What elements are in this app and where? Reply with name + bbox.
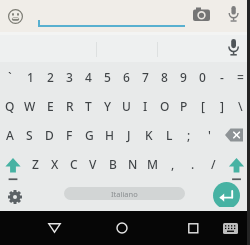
button[interactable]: H xyxy=(99,120,119,149)
button[interactable] xyxy=(219,120,250,149)
staticText: E xyxy=(47,98,54,114)
button[interactable]: 9 xyxy=(174,62,193,91)
button[interactable]: = xyxy=(231,62,250,91)
staticText: ; xyxy=(187,127,191,143)
button[interactable]: Z xyxy=(26,149,45,178)
staticText: 8 xyxy=(161,69,168,85)
button[interactable]: Q xyxy=(0,91,20,120)
staticText: , xyxy=(171,156,175,172)
button[interactable]: O xyxy=(155,91,174,120)
staticText: M xyxy=(147,156,159,172)
button[interactable]: R xyxy=(60,91,79,120)
button[interactable]: - xyxy=(212,62,231,91)
button[interactable] xyxy=(42,216,66,240)
button[interactable]: Y xyxy=(98,91,117,120)
button[interactable]: T xyxy=(79,91,98,120)
button[interactable]: 0 xyxy=(193,62,212,91)
staticText: - xyxy=(220,69,224,85)
staticText: K xyxy=(145,127,153,143)
button[interactable]: ; xyxy=(179,120,199,149)
button[interactable]: K xyxy=(139,120,159,149)
button[interactable] xyxy=(181,216,205,240)
staticText: L xyxy=(166,127,173,143)
staticText: [ xyxy=(201,98,205,114)
button[interactable]: 8 xyxy=(155,62,174,91)
staticText: 9 xyxy=(180,69,187,85)
staticText: H xyxy=(105,127,114,143)
button[interactable]: ' xyxy=(199,120,219,149)
staticText: N xyxy=(128,156,138,172)
button[interactable]: . xyxy=(183,149,203,178)
button[interactable]: P xyxy=(174,91,193,120)
staticText: 6 xyxy=(123,69,130,85)
button[interactable]: I xyxy=(136,91,155,120)
button[interactable]: Italiano xyxy=(64,187,185,200)
button[interactable]: J xyxy=(119,120,139,149)
staticText: ] xyxy=(220,98,224,114)
button[interactable]: ` xyxy=(0,62,20,91)
button[interactable]: 3 xyxy=(60,62,79,91)
button[interactable]: N xyxy=(123,149,143,178)
button[interactable] xyxy=(227,38,240,57)
staticText: Y xyxy=(104,98,112,114)
staticText: B xyxy=(109,156,117,172)
staticText: 4 xyxy=(85,69,92,85)
button[interactable]: \ xyxy=(231,91,250,120)
button[interactable]: S xyxy=(19,120,39,149)
button[interactable] xyxy=(192,6,211,22)
button[interactable] xyxy=(7,189,23,205)
staticText: V xyxy=(89,156,97,172)
button[interactable]: C xyxy=(64,149,83,178)
staticText: P xyxy=(180,98,188,114)
staticText: 3 xyxy=(66,69,73,85)
button[interactable]: 1 xyxy=(20,62,40,91)
button[interactable]: 7 xyxy=(136,62,155,91)
staticText: = xyxy=(237,69,244,85)
button[interactable]: , xyxy=(163,149,183,178)
button[interactable] xyxy=(227,5,240,24)
button[interactable] xyxy=(220,218,240,238)
button[interactable]: 6 xyxy=(117,62,136,91)
button[interactable]: G xyxy=(79,120,99,149)
button[interactable]: / xyxy=(203,149,223,178)
button[interactable] xyxy=(8,9,23,24)
staticText: Q xyxy=(5,98,15,114)
staticText: 7 xyxy=(142,69,149,85)
staticText: J xyxy=(127,127,131,143)
staticText: U xyxy=(122,98,131,114)
button[interactable] xyxy=(223,149,250,178)
button[interactable]: A xyxy=(0,120,19,149)
staticText: 0 xyxy=(199,69,206,85)
button[interactable]: W xyxy=(20,91,40,120)
button[interactable]: ] xyxy=(212,91,231,120)
staticText: Italiano xyxy=(111,189,138,199)
button[interactable]: M xyxy=(143,149,163,178)
staticText: D xyxy=(45,127,54,143)
button[interactable]: F xyxy=(59,120,79,149)
staticText: F xyxy=(66,127,73,143)
button[interactable]: X xyxy=(45,149,64,178)
button[interactable]: L xyxy=(159,120,179,149)
staticText: 5 xyxy=(104,69,111,85)
button[interactable] xyxy=(213,182,240,209)
staticText: 2 xyxy=(47,69,54,85)
button[interactable]: U xyxy=(117,91,136,120)
staticText: / xyxy=(211,156,216,172)
button[interactable]: 2 xyxy=(40,62,60,91)
staticText: . xyxy=(191,156,195,172)
staticText: A xyxy=(6,127,14,143)
button[interactable]: D xyxy=(39,120,59,149)
button[interactable] xyxy=(110,216,134,240)
staticText: Z xyxy=(32,156,39,172)
button[interactable]: B xyxy=(103,149,123,178)
button[interactable]: 5 xyxy=(98,62,117,91)
button[interactable]: V xyxy=(83,149,103,178)
button[interactable]: [ xyxy=(193,91,212,120)
staticText: I xyxy=(143,98,148,114)
staticText: S xyxy=(26,127,33,143)
staticText: \ xyxy=(238,98,243,114)
button[interactable]: E xyxy=(40,91,60,120)
button[interactable]: 4 xyxy=(79,62,98,91)
button[interactable] xyxy=(0,149,26,178)
